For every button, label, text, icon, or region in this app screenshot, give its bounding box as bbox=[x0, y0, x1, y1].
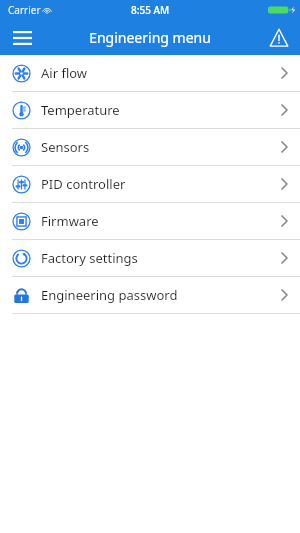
staticText: Air flow bbox=[41, 64, 88, 82]
staticText: Engineering password bbox=[41, 286, 178, 304]
staticText: Sensors bbox=[41, 138, 90, 156]
button[interactable]: Factory settings bbox=[0, 240, 300, 276]
staticText: Factory settings bbox=[41, 249, 138, 267]
staticText: Carrier bbox=[8, 3, 41, 17]
staticText: PID controller bbox=[41, 175, 126, 193]
staticText: 8:55 AM bbox=[131, 3, 170, 17]
button[interactable]: Warnings bbox=[258, 20, 300, 55]
button[interactable]: Menu bbox=[0, 20, 44, 55]
button[interactable]: Firmware bbox=[0, 203, 300, 239]
button[interactable]: Sensors bbox=[0, 129, 300, 165]
staticText: Firmware bbox=[41, 212, 99, 230]
button[interactable]: Air flow bbox=[0, 55, 300, 91]
staticText: Engineering menu bbox=[89, 28, 211, 47]
button[interactable]: Temperature bbox=[0, 92, 300, 128]
button[interactable]: PID controller bbox=[0, 166, 300, 202]
button[interactable]: Engineering password bbox=[0, 277, 300, 313]
staticText: Temperature bbox=[41, 101, 120, 119]
